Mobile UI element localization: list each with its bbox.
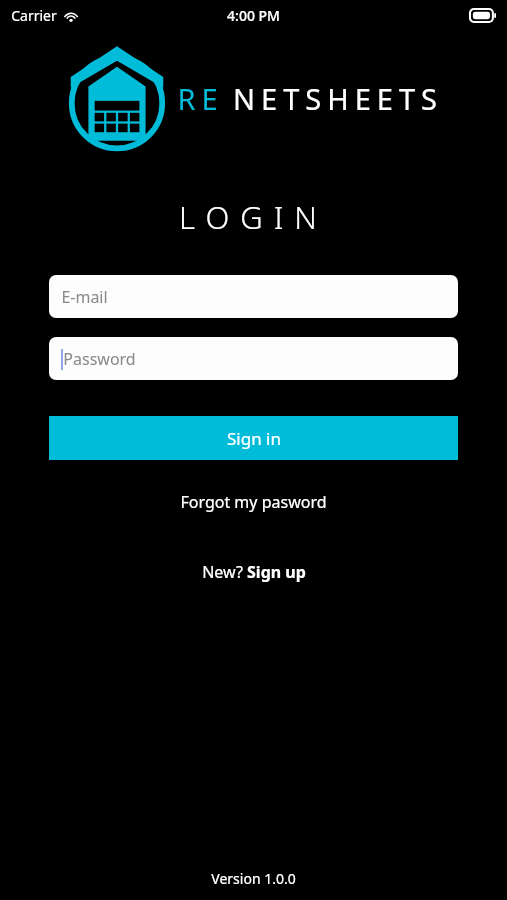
staticText: Password: [63, 348, 136, 370]
staticText: LOGIN: [179, 196, 328, 238]
staticText: E-mail: [61, 286, 108, 308]
staticText: NETSHEETS: [233, 79, 443, 118]
button[interactable]: E-mail: [49, 275, 458, 318]
button[interactable]: Password: [49, 337, 458, 380]
staticText: RE: [177, 79, 224, 118]
staticText: Forgot my pasword: [180, 491, 327, 513]
staticText: Carrier: [11, 6, 57, 25]
staticText: New? Sign up: [202, 561, 306, 583]
button[interactable]: New? Sign up: [0, 555, 507, 589]
button[interactable]: Sign in: [49, 416, 458, 460]
staticText: Version 1.0.0: [211, 869, 296, 888]
staticText: 4:00 PM: [227, 6, 280, 25]
button[interactable]: Forgot my pasword: [0, 485, 507, 519]
staticText: Sign in: [227, 427, 281, 450]
